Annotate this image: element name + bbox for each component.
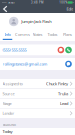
staticText: Lender — [3, 111, 15, 116]
staticText: Today — [3, 129, 13, 134]
staticText: Jumpin Jack Flash — [21, 19, 51, 24]
staticText: Chuck Finley — [46, 81, 68, 86]
button[interactable]: Source — [0, 89, 75, 98]
staticText: Info — [4, 32, 10, 37]
staticText: MILESTONES — [3, 123, 16, 127]
staticText: Lead — [60, 101, 68, 106]
staticText: (555) 555-5555 — [3, 47, 27, 53]
button[interactable]: rollingstones@gmail.com — [0, 58, 75, 70]
staticText: Stage — [3, 101, 12, 106]
staticText: Edit — [66, 6, 72, 12]
staticText: Trulia — [58, 91, 68, 96]
staticText: Comms — [15, 32, 30, 37]
button[interactable]: Todos — [45, 30, 60, 41]
button[interactable]: Stage — [0, 99, 75, 108]
button[interactable]: Plans — [60, 30, 75, 41]
staticText: ••••• AT&T — [2, 1, 15, 4]
staticText: 100% — [59, 1, 67, 4]
button[interactable]: Comms — [15, 30, 30, 41]
staticText: Notes — [32, 32, 42, 37]
staticText: Todos — [47, 32, 57, 37]
button[interactable]: Today — [0, 128, 75, 135]
button[interactable]: Info — [0, 30, 15, 41]
staticText: Source — [3, 91, 15, 96]
button[interactable]: Lender — [0, 108, 75, 118]
staticText: Plans — [63, 32, 72, 37]
button[interactable]: Notes — [30, 30, 45, 41]
button[interactable]: (555) 555-5555 — [0, 44, 75, 55]
button[interactable]: Back — [0, 5, 11, 13]
button[interactable]: Edit — [63, 5, 75, 13]
button[interactable]: Assigned to — [0, 79, 75, 88]
staticText: Assigned to — [3, 81, 23, 86]
staticText: 3:48 PM — [31, 1, 43, 4]
staticText: rollingstones@gmail.com — [3, 61, 48, 67]
